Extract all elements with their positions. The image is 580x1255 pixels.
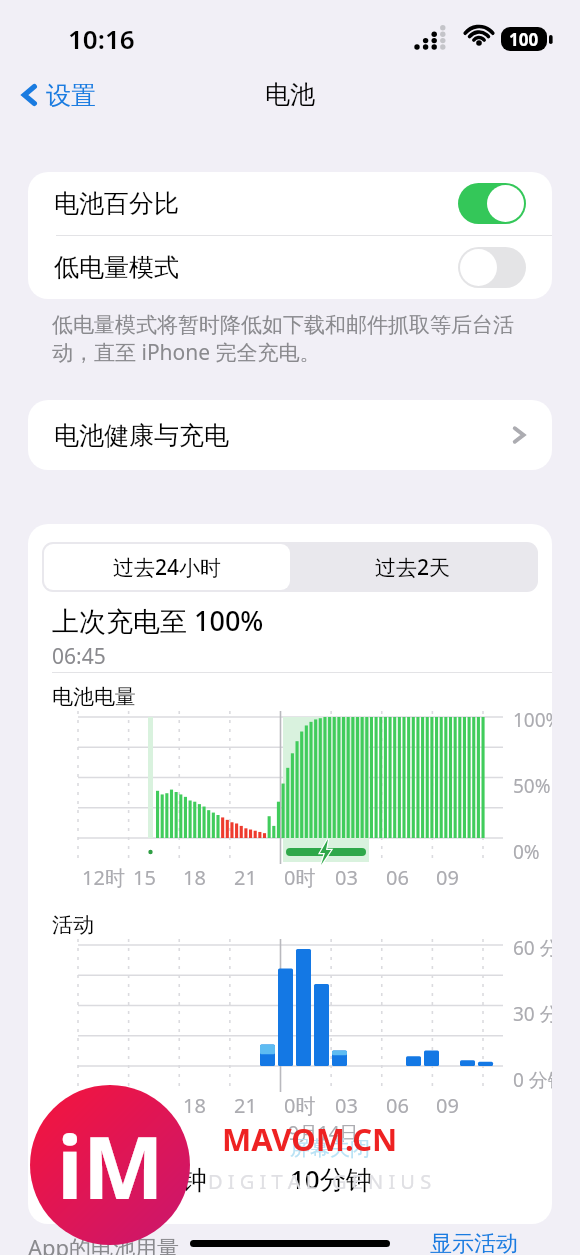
staticText: 60 分钟 bbox=[513, 935, 552, 961]
button[interactable]: 设置 bbox=[14, 75, 102, 115]
staticText: 上次充电至 100% bbox=[52, 602, 264, 639]
button[interactable]: 过去2天 bbox=[290, 544, 536, 590]
staticText: 06 bbox=[386, 1092, 409, 1119]
staticText: 09 bbox=[436, 1092, 459, 1119]
staticText: 03 bbox=[335, 1092, 358, 1119]
staticText: 0时 bbox=[284, 1092, 316, 1119]
staticText: 0 分钟 bbox=[513, 1067, 552, 1093]
staticText: 屏幕关闭 bbox=[290, 1136, 370, 1161]
button[interactable]: 低电量模式 bbox=[28, 236, 552, 299]
staticText: 21 bbox=[234, 864, 257, 891]
staticText: 10:16 bbox=[68, 21, 135, 56]
staticText: 21 bbox=[234, 1092, 257, 1119]
staticText: 电池 bbox=[265, 79, 315, 110]
staticText: 电池百分比 bbox=[54, 188, 179, 219]
staticText: 10分钟 bbox=[290, 1161, 372, 1197]
staticText: 显示活动 bbox=[430, 1230, 518, 1255]
staticText: 过去24小时 bbox=[113, 553, 222, 582]
staticText: 0时 bbox=[284, 864, 316, 891]
staticText: 12时 bbox=[82, 864, 125, 891]
staticText: 屏幕打开 bbox=[58, 1136, 138, 1161]
staticText: 15 bbox=[133, 864, 156, 891]
staticText: App的电池用量 bbox=[28, 1232, 180, 1255]
staticText: 动，直至 iPhone 完全充电。 bbox=[52, 338, 321, 367]
staticText: 06 bbox=[386, 864, 409, 891]
staticText: 100 bbox=[509, 28, 539, 51]
staticText: 3小时12分钟 bbox=[58, 1161, 207, 1197]
staticText: 06:45 bbox=[52, 642, 106, 671]
staticText: iM bbox=[57, 1107, 164, 1224]
staticText: 03 bbox=[335, 864, 358, 891]
staticText: 50% bbox=[513, 773, 551, 799]
staticText: 09 bbox=[436, 864, 459, 891]
staticText: 电池健康与充电 bbox=[54, 420, 229, 451]
staticText: 18 bbox=[183, 1092, 206, 1119]
staticText: 0% bbox=[513, 839, 540, 865]
staticText: 18 bbox=[183, 864, 206, 891]
staticText: 30 分钟 bbox=[513, 1001, 552, 1027]
staticText: 电池电量 bbox=[52, 684, 136, 710]
staticText: 设置 bbox=[46, 80, 96, 111]
button[interactable]: 过去24小时 bbox=[44, 544, 290, 590]
staticText: 低电量模式将暂时降低如下载和邮件抓取等后台活 bbox=[52, 312, 514, 338]
staticText: 100% bbox=[513, 707, 552, 733]
staticText: MAVOM.CN bbox=[222, 1118, 398, 1160]
button[interactable]: 低电量模式 bbox=[458, 247, 526, 288]
button[interactable]: 显示活动 bbox=[430, 1230, 518, 1255]
staticText: 活动 bbox=[52, 912, 94, 938]
button[interactable]: 电池健康与充电 bbox=[28, 400, 552, 470]
staticText: D I G I T A L G E N I U S bbox=[208, 1168, 432, 1195]
button[interactable]: 电池百分比 bbox=[28, 172, 552, 235]
staticText: 过去2天 bbox=[375, 553, 451, 582]
staticText: 15 bbox=[133, 1092, 156, 1119]
staticText: 9月14日 bbox=[288, 1120, 359, 1146]
button[interactable]: 电池百分比 bbox=[458, 183, 526, 224]
staticText: 低电量模式 bbox=[54, 252, 179, 283]
